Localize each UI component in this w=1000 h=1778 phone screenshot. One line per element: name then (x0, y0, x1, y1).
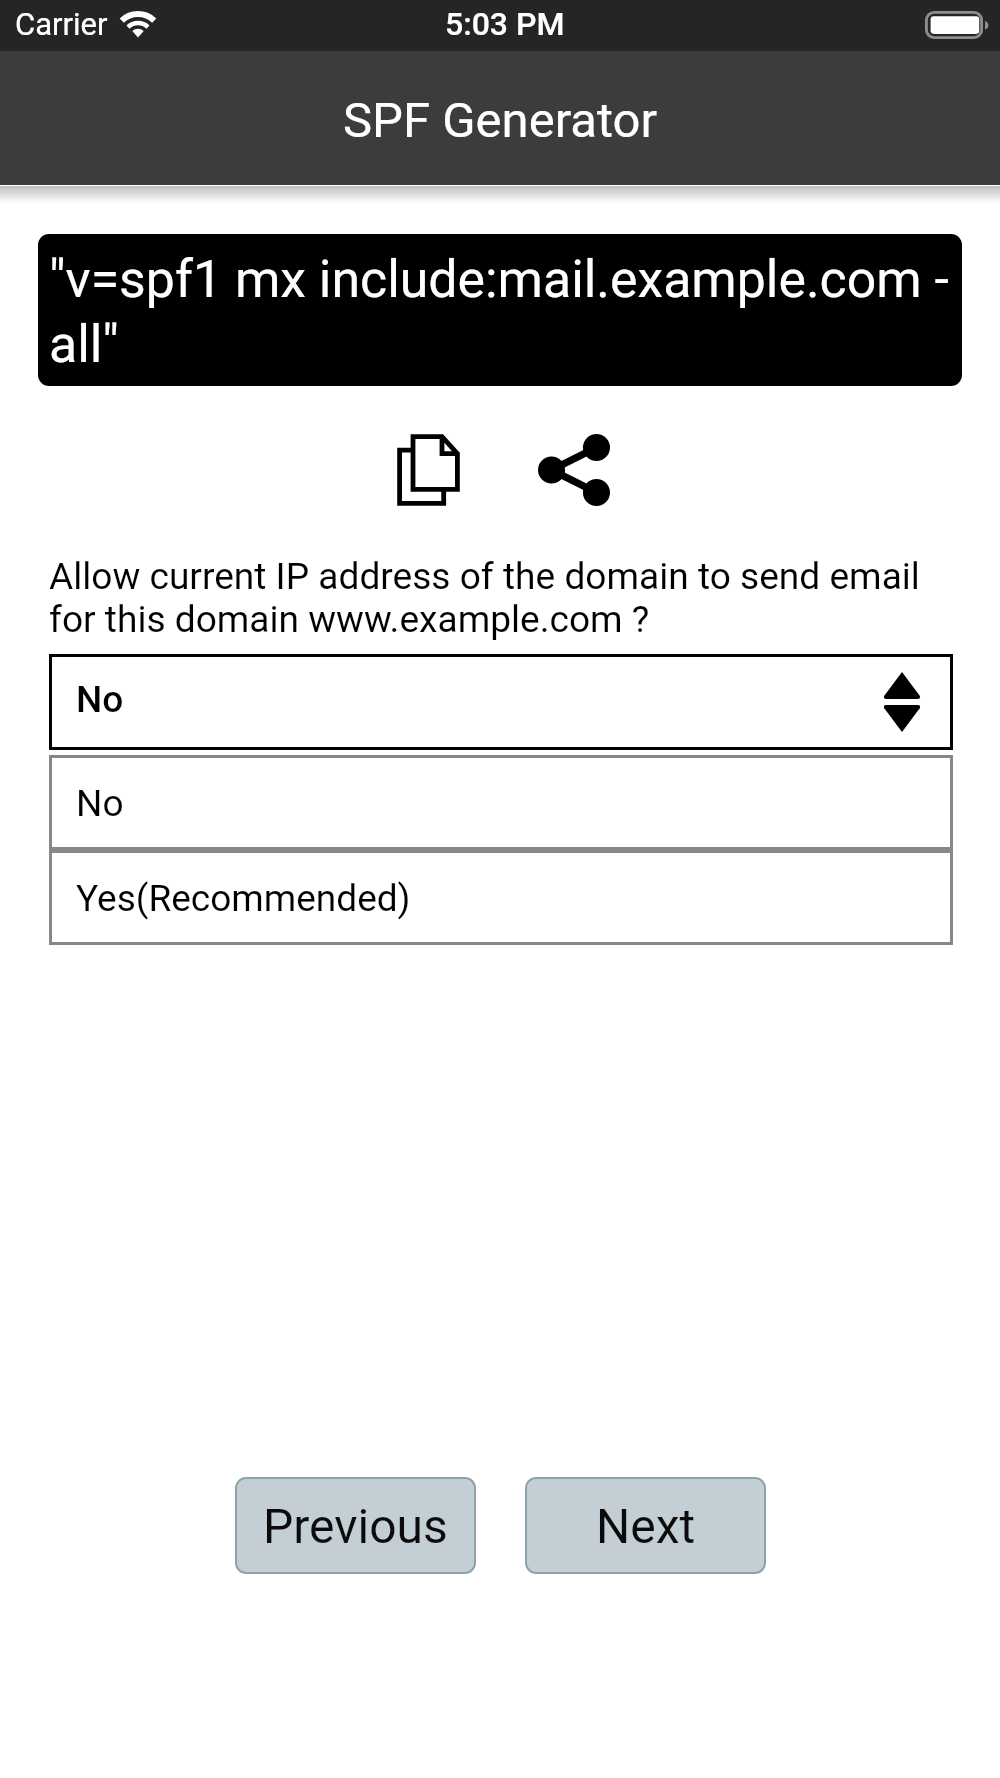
staticText: No (76, 782, 124, 825)
button[interactable]: Copy (375, 412, 482, 528)
staticText: Previous (263, 1498, 448, 1554)
staticText: Next (596, 1498, 696, 1554)
button[interactable]: Previous (235, 1477, 476, 1574)
staticText: "v=spf1 mx include:mail.example.com - al… (49, 249, 949, 375)
staticText: 5:03 PM (445, 5, 565, 43)
button[interactable]: Share (516, 412, 632, 528)
button[interactable]: Yes(Recommended) (49, 850, 953, 945)
staticText: Yes(Recommended) (76, 877, 411, 920)
staticText: Allow current IP address of the domain t… (49, 555, 920, 641)
staticText: Carrier (15, 6, 108, 42)
staticText: SPF Generator (343, 92, 658, 149)
button[interactable]: Next (525, 1477, 766, 1574)
button[interactable]: No (49, 755, 953, 850)
button[interactable]: No (49, 654, 953, 750)
staticText: No (76, 678, 124, 721)
